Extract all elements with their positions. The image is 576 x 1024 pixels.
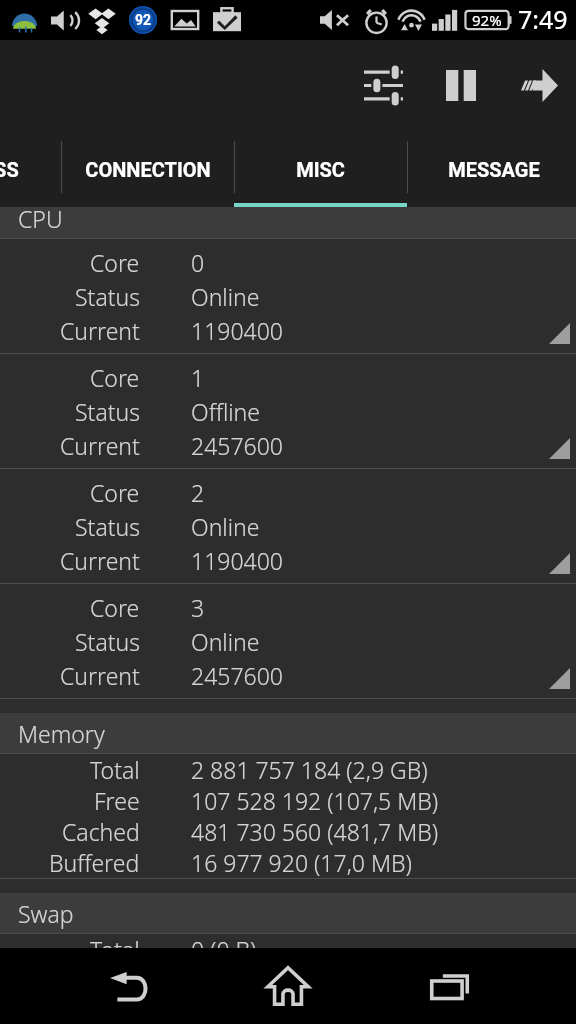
staticText: Total	[90, 934, 140, 948]
button[interactable]: PROCESS	[0, 137, 61, 207]
button[interactable]: Back	[92, 950, 164, 1022]
staticText: Current	[60, 315, 140, 346]
staticText: Current	[60, 545, 140, 576]
staticText: 1190400	[191, 545, 283, 576]
staticText: Core	[90, 362, 140, 393]
staticText: Status	[75, 511, 140, 542]
staticText: 2 881 757 184 (2,9 GB)	[191, 754, 428, 785]
button[interactable]: MESSAGE	[407, 137, 576, 207]
button[interactable]: Settings	[344, 46, 422, 124]
staticText: Online	[191, 626, 260, 657]
staticText: Core	[90, 592, 140, 623]
staticText: Offline	[191, 396, 260, 427]
staticText: Online	[191, 511, 260, 542]
staticText: CPU	[18, 207, 63, 234]
staticText: CONNECTION	[85, 158, 211, 181]
staticText: 1	[191, 362, 205, 393]
staticText: PROCESS	[0, 158, 19, 181]
staticText: Free	[94, 785, 140, 816]
staticText: Cached	[62, 816, 140, 847]
staticText: 3	[191, 592, 205, 623]
staticText: Core	[90, 477, 140, 508]
staticText: Current	[60, 430, 140, 461]
button[interactable]: Next	[500, 46, 576, 124]
staticText: Total	[90, 754, 140, 785]
staticText: 1190400	[191, 315, 283, 346]
staticText: 0 (0 B)	[191, 934, 257, 948]
staticText: 107 528 192 (107,5 MB)	[191, 785, 439, 816]
staticText: 92	[135, 12, 152, 28]
staticText: 16 977 920 (17,0 MB)	[191, 847, 412, 878]
staticText: 0	[191, 247, 205, 278]
staticText: 2457600	[191, 660, 283, 691]
staticText: Buffered	[49, 847, 140, 878]
staticText: Status	[75, 396, 140, 427]
button[interactable]: CONNECTION	[61, 137, 234, 207]
staticText: MISC	[296, 158, 345, 181]
button[interactable]: Pause	[422, 46, 500, 124]
staticText: Status	[75, 281, 140, 312]
staticText: MESSAGE	[448, 158, 540, 181]
staticText: 2457600	[191, 430, 283, 461]
staticText: 481 730 560 (481,7 MB)	[191, 816, 439, 847]
staticText: Memory	[18, 718, 105, 749]
staticText: Online	[191, 281, 260, 312]
button[interactable]: MISC	[234, 137, 407, 207]
staticText: 2	[191, 477, 205, 508]
button[interactable]: Home	[252, 950, 324, 1022]
staticText: 92%	[472, 10, 502, 30]
staticText: Current	[60, 660, 140, 691]
staticText: Core	[90, 247, 140, 278]
staticText: 7:49	[518, 2, 568, 36]
button[interactable]: Recents	[413, 950, 485, 1022]
staticText: Status	[75, 626, 140, 657]
staticText: Swap	[18, 898, 74, 929]
